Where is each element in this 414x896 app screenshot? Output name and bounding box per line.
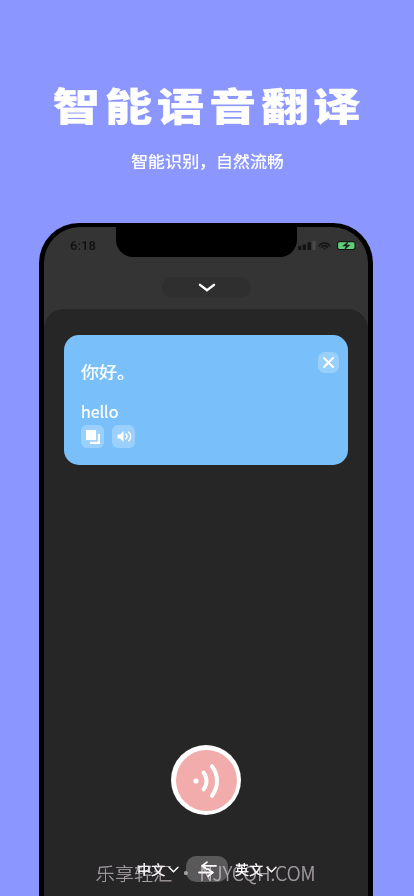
- button[interactable]: 中文: [137, 853, 178, 885]
- staticText: 乐享轻汇 · NJYCQH.COM: [96, 859, 316, 887]
- button[interactable]: Swap languages: [186, 856, 228, 882]
- button[interactable]: Record: [171, 745, 241, 815]
- staticText: 6:18: [70, 238, 96, 253]
- button[interactable]: Close: [318, 352, 339, 373]
- button[interactable]: 你好。: [64, 335, 348, 465]
- button[interactable]: Collapse: [162, 277, 251, 298]
- staticText: 英文: [235, 859, 263, 879]
- button[interactable]: Copy: [81, 425, 104, 448]
- button[interactable]: 英文: [235, 853, 276, 885]
- staticText: hello: [81, 399, 119, 422]
- staticText: 你好。: [81, 358, 135, 384]
- staticText: 中文: [137, 859, 165, 879]
- staticText: 智能语音翻译: [53, 76, 366, 132]
- button[interactable]: Speak: [112, 425, 135, 448]
- staticText: 智能识别，自然流畅: [131, 148, 284, 173]
